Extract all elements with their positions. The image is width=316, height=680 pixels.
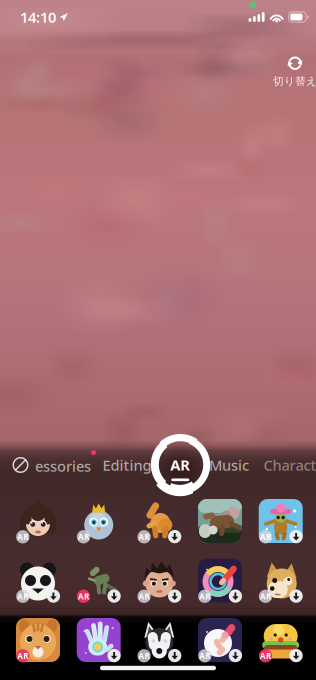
staticText: 切り替え xyxy=(273,75,316,88)
staticText: AR xyxy=(260,591,271,602)
button[interactable]: Characte xyxy=(268,448,316,482)
staticText: 14:10 xyxy=(20,7,56,27)
staticText: AR xyxy=(17,591,28,602)
staticText: Music xyxy=(209,455,249,475)
button[interactable]: Effect xyxy=(198,558,242,602)
button[interactable]: Effect xyxy=(77,558,121,602)
staticText: Editing xyxy=(102,455,151,475)
button[interactable]: Editing xyxy=(104,448,150,482)
staticText: Characte xyxy=(263,455,316,475)
staticText: AR xyxy=(260,650,271,661)
button[interactable]: Effect xyxy=(259,618,303,662)
button[interactable]: No effect xyxy=(5,450,35,480)
button[interactable]: Effect xyxy=(16,618,60,662)
staticText: AR xyxy=(260,531,271,542)
button[interactable]: Effect xyxy=(137,558,181,602)
button[interactable]: Effect xyxy=(259,499,303,543)
staticText: AR xyxy=(17,531,28,542)
staticText: AR xyxy=(78,591,89,602)
button[interactable]: Effect xyxy=(198,618,242,662)
staticText: AR xyxy=(139,650,150,661)
button[interactable]: Effect xyxy=(16,558,60,602)
button[interactable]: Music xyxy=(209,448,249,482)
button[interactable]: AR mode xyxy=(149,434,211,496)
button[interactable]: 切り替え xyxy=(273,54,316,88)
staticText: AR xyxy=(139,591,150,602)
staticText: AR xyxy=(170,455,190,475)
staticText: essories xyxy=(35,456,91,476)
button[interactable]: Effect xyxy=(77,499,121,543)
button[interactable]: Effect xyxy=(16,499,60,543)
button[interactable]: Effect xyxy=(137,499,181,543)
staticText: AR xyxy=(199,650,210,661)
button[interactable]: essories xyxy=(35,450,96,476)
button[interactable]: Effect xyxy=(77,618,121,662)
button[interactable]: Effect xyxy=(198,499,242,543)
staticText: AR xyxy=(139,531,150,542)
staticText: AR xyxy=(78,531,89,542)
button[interactable]: Effect xyxy=(137,618,181,662)
staticText: AR xyxy=(199,591,210,602)
button[interactable]: Effect xyxy=(259,558,303,602)
staticText: AR xyxy=(17,650,28,661)
